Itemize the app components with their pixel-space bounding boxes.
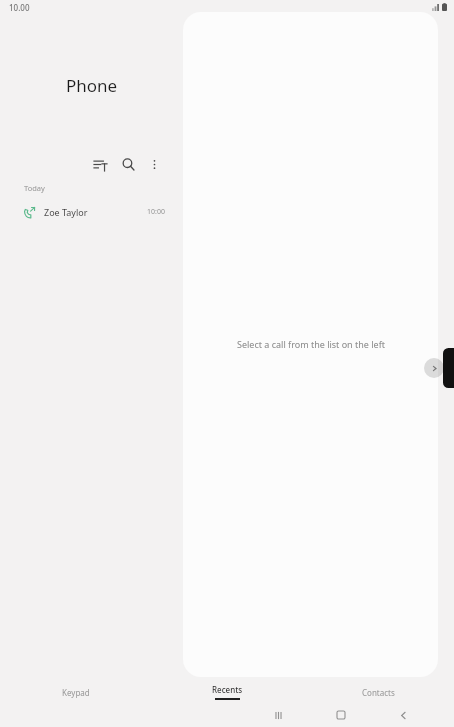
button[interactable]: More options: [143, 153, 165, 175]
staticText: Zoe Taylor: [44, 206, 88, 218]
button[interactable]: Keypad: [0, 680, 152, 704]
button[interactable]: Home: [329, 703, 353, 727]
button[interactable]: Contacts: [303, 680, 454, 704]
button[interactable]: Search: [117, 153, 139, 175]
staticText: Today: [24, 183, 45, 193]
button[interactable]: Recent apps: [266, 703, 290, 727]
staticText: Recents: [212, 684, 243, 695]
staticText: 10:00: [147, 207, 165, 217]
button[interactable]: Open panel: [443, 348, 454, 388]
staticText: Contacts: [362, 687, 395, 698]
button[interactable]: Zoe Taylor: [0, 201, 183, 223]
staticText: Keypad: [62, 687, 90, 698]
staticText: 10.00: [9, 2, 30, 13]
staticText: Phone: [0, 74, 183, 97]
staticText: Select a call from the list on the left: [237, 338, 385, 350]
button[interactable]: Recents: [152, 680, 303, 704]
button[interactable]: Back: [391, 703, 415, 727]
button[interactable]: Sort: [89, 153, 111, 175]
